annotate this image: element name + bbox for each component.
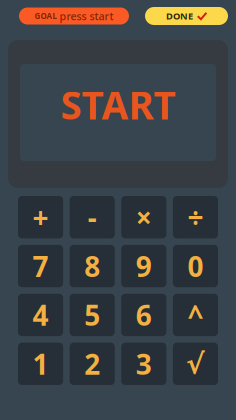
staticText: 5 (84, 296, 100, 333)
button[interactable]: 3 (121, 343, 166, 385)
staticText: 9 (136, 247, 152, 285)
staticText: ÷ (187, 199, 203, 236)
staticText: 6 (136, 296, 152, 333)
staticText: 8 (84, 247, 100, 285)
button[interactable]: 9 (121, 245, 166, 287)
staticText: press start (59, 9, 113, 23)
button[interactable]: - (70, 196, 115, 238)
staticText: GOAL (34, 11, 56, 21)
button[interactable]: 0 (173, 245, 218, 287)
button[interactable]: 6 (121, 294, 166, 336)
staticText: + (33, 199, 49, 236)
button[interactable]: ^ (173, 294, 218, 336)
button[interactable]: ÷ (173, 196, 218, 238)
button[interactable]: + (18, 196, 63, 238)
button[interactable]: 7 (18, 245, 63, 287)
staticText: - (88, 199, 97, 236)
staticText: 0 (187, 247, 203, 285)
staticText: START (60, 79, 175, 130)
button[interactable]: GOAL (19, 7, 129, 24)
button[interactable]: DONE (145, 7, 228, 25)
staticText: ^ (187, 296, 203, 333)
staticText: 2 (84, 345, 100, 382)
staticText: 7 (33, 247, 49, 285)
button[interactable]: 2 (70, 343, 115, 385)
button[interactable]: 4 (18, 294, 63, 336)
staticText: DONE (166, 10, 193, 22)
staticText: 4 (33, 296, 49, 333)
staticText: × (136, 199, 152, 236)
staticText: 1 (33, 345, 49, 382)
button[interactable]: × (121, 196, 166, 238)
button[interactable]: 5 (70, 294, 115, 336)
button[interactable]: 1 (18, 343, 63, 385)
button[interactable]: 8 (70, 245, 115, 287)
staticText: 3 (136, 345, 152, 382)
button[interactable]: START (8, 40, 228, 188)
staticText: √ (186, 348, 205, 380)
button[interactable]: √ (173, 343, 218, 385)
